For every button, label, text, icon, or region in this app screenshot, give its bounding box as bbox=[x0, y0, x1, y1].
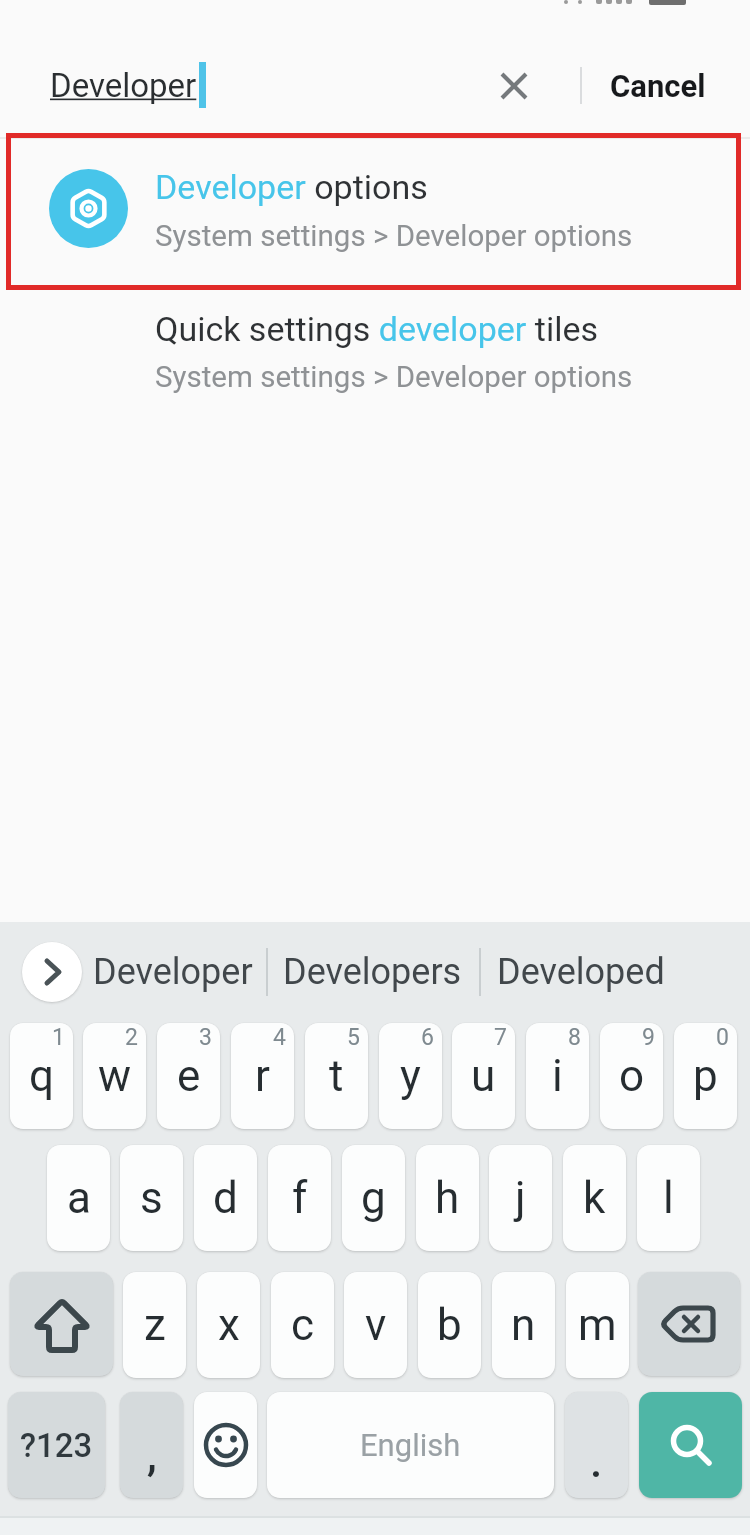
button[interactable]: r bbox=[231, 1023, 294, 1129]
staticText: 4 bbox=[273, 1024, 286, 1051]
button[interactable]: m bbox=[566, 1272, 629, 1378]
button[interactable]: , bbox=[120, 1392, 183, 1498]
button[interactable]: z bbox=[123, 1272, 186, 1378]
staticText: 2 bbox=[125, 1024, 138, 1051]
button[interactable]: Cancel bbox=[610, 62, 706, 110]
staticText: 3 bbox=[199, 1024, 212, 1051]
button[interactable]: q bbox=[10, 1023, 73, 1129]
button[interactable]: ?123 bbox=[8, 1392, 105, 1498]
button[interactable]: p bbox=[674, 1023, 737, 1129]
staticText: s bbox=[140, 1172, 163, 1224]
button[interactable] bbox=[22, 942, 82, 1002]
staticText: u bbox=[471, 1050, 496, 1102]
staticText: ?123 bbox=[20, 1426, 93, 1465]
staticText: k bbox=[583, 1172, 606, 1224]
button[interactable]: o bbox=[600, 1023, 663, 1129]
button[interactable]: h bbox=[416, 1145, 479, 1251]
button[interactable]: x bbox=[197, 1272, 260, 1378]
staticText: 5 bbox=[347, 1024, 360, 1051]
button[interactable] bbox=[10, 1272, 113, 1376]
staticText: r bbox=[255, 1050, 270, 1102]
staticText: h bbox=[435, 1172, 460, 1224]
staticText: g bbox=[361, 1172, 386, 1224]
staticText: Quick settings developer tiles bbox=[155, 309, 599, 349]
staticText: Developer bbox=[50, 66, 197, 105]
button[interactable]: f bbox=[268, 1145, 331, 1251]
staticText: , bbox=[147, 1429, 157, 1481]
staticText: Developer bbox=[93, 951, 253, 993]
button[interactable] bbox=[639, 1392, 742, 1498]
staticText: l bbox=[663, 1172, 674, 1224]
staticText: p bbox=[693, 1050, 718, 1102]
staticText: e bbox=[177, 1050, 201, 1102]
button[interactable]: u bbox=[452, 1023, 515, 1129]
staticText: 7 bbox=[494, 1024, 507, 1051]
button[interactable]: . bbox=[565, 1392, 628, 1498]
staticText: t bbox=[329, 1050, 344, 1102]
staticText: b bbox=[437, 1299, 462, 1351]
button[interactable]: j bbox=[489, 1145, 552, 1251]
button[interactable]: v bbox=[344, 1272, 407, 1378]
button[interactable]: English bbox=[267, 1392, 554, 1498]
button[interactable] bbox=[638, 1272, 740, 1376]
button[interactable]: c bbox=[271, 1272, 334, 1378]
button[interactable]: Developers bbox=[283, 942, 462, 1002]
staticText: System settings > Developer options bbox=[155, 219, 633, 254]
staticText: Cancel bbox=[610, 68, 706, 104]
staticText: 1 bbox=[52, 1024, 65, 1051]
staticText: c bbox=[291, 1299, 315, 1351]
button[interactable] bbox=[6, 300, 741, 410]
staticText: Developer options bbox=[155, 167, 428, 207]
button[interactable]: y bbox=[379, 1023, 442, 1129]
staticText: 6 bbox=[421, 1024, 434, 1051]
button[interactable] bbox=[194, 1392, 257, 1498]
staticText: v bbox=[365, 1299, 387, 1351]
staticText: Developed bbox=[497, 951, 665, 993]
button[interactable]: g bbox=[342, 1145, 405, 1251]
button[interactable]: l bbox=[637, 1145, 700, 1251]
button[interactable]: s bbox=[120, 1145, 183, 1251]
staticText: 8 bbox=[568, 1024, 581, 1051]
staticText: i bbox=[552, 1050, 563, 1102]
staticText: English bbox=[360, 1427, 461, 1463]
staticText: f bbox=[292, 1172, 308, 1224]
staticText: y bbox=[400, 1050, 421, 1102]
staticText: . bbox=[590, 1436, 603, 1488]
button[interactable]: a bbox=[47, 1145, 110, 1251]
button[interactable]: w bbox=[83, 1023, 146, 1129]
staticText: m bbox=[578, 1299, 617, 1351]
button[interactable]: d bbox=[194, 1145, 257, 1251]
staticText: j bbox=[515, 1172, 526, 1224]
button[interactable] bbox=[6, 133, 741, 290]
staticText: Developers bbox=[283, 951, 462, 993]
button[interactable]: n bbox=[492, 1272, 555, 1378]
staticText: d bbox=[213, 1172, 238, 1224]
staticText: a bbox=[67, 1172, 91, 1224]
staticText: x bbox=[218, 1299, 240, 1351]
button[interactable] bbox=[500, 72, 528, 100]
button[interactable]: i bbox=[526, 1023, 589, 1129]
button[interactable]: k bbox=[563, 1145, 626, 1251]
staticText: w bbox=[98, 1050, 132, 1102]
staticText: z bbox=[144, 1299, 166, 1351]
button[interactable]: e bbox=[157, 1023, 220, 1129]
staticText: 0 bbox=[716, 1024, 729, 1051]
staticText: o bbox=[619, 1050, 645, 1102]
staticText: 9 bbox=[642, 1024, 655, 1051]
button[interactable]: Developer bbox=[93, 942, 253, 1002]
button[interactable]: t bbox=[305, 1023, 368, 1129]
staticText: System settings > Developer options bbox=[155, 360, 633, 395]
staticText: n bbox=[511, 1299, 536, 1351]
staticText: q bbox=[29, 1050, 55, 1102]
button[interactable]: b bbox=[418, 1272, 481, 1378]
button[interactable]: Developed bbox=[497, 942, 665, 1002]
